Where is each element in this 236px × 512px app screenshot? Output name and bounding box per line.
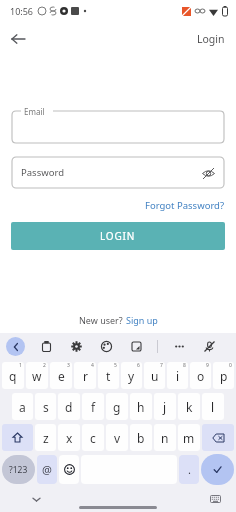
staticText: i [176, 368, 180, 384]
button[interactable]: i [167, 362, 188, 389]
staticText: c [90, 430, 96, 446]
staticText: d [65, 399, 73, 415]
staticText: n [161, 430, 169, 446]
staticText: q [9, 368, 17, 384]
button[interactable]: Shift [2, 424, 33, 451]
staticText: w [32, 368, 42, 384]
staticText: 3 [67, 362, 70, 369]
staticText: 6 [137, 362, 140, 369]
staticText: . [188, 462, 191, 477]
button[interactable]: Backspace [202, 424, 234, 451]
staticText: f [91, 399, 96, 415]
staticText: p [220, 368, 228, 384]
button[interactable]: d [58, 393, 80, 420]
staticText: @ [42, 462, 52, 477]
button[interactable]: Switch keyboard [207, 491, 223, 507]
button[interactable]: Hide keyboard [28, 491, 44, 507]
staticText: Password [21, 166, 64, 179]
button[interactable]: q [2, 362, 24, 389]
button[interactable]: Password [11, 156, 225, 189]
button[interactable]: g [106, 393, 128, 420]
staticText: l [211, 399, 215, 415]
staticText: Email [24, 106, 45, 117]
button[interactable]: f [82, 393, 104, 420]
button[interactable]: h [130, 393, 152, 420]
button[interactable]: Login [197, 32, 225, 46]
staticText: 7 [160, 362, 163, 369]
staticText: z [43, 430, 49, 446]
staticText: New user? [79, 314, 126, 326]
staticText: 1 [19, 362, 22, 369]
staticText: a [19, 399, 26, 415]
button[interactable]: Forgot Password? [145, 199, 225, 212]
button[interactable]: Sign up [126, 314, 158, 326]
button[interactable]: More options [170, 337, 188, 355]
staticText: y [128, 368, 135, 384]
staticText: b [137, 430, 145, 446]
button[interactable]: u [144, 362, 165, 389]
staticText: o [197, 368, 205, 384]
button[interactable]: y [121, 362, 142, 389]
staticText: k [186, 399, 193, 415]
button[interactable]: Voice input off [200, 337, 218, 355]
button[interactable]: x [58, 424, 80, 451]
button[interactable]: c [82, 424, 104, 451]
staticText: g [113, 399, 121, 415]
button[interactable]: Previous [6, 337, 25, 356]
staticText: 5 [114, 362, 117, 369]
staticText: h [137, 399, 145, 415]
button[interactable]: l [202, 393, 224, 420]
button[interactable]: p [213, 362, 234, 389]
staticText: r [83, 368, 88, 384]
button[interactable]: LOGIN [11, 222, 225, 250]
staticText: v [114, 430, 121, 446]
staticText: j [163, 399, 167, 415]
staticText: LOGIN [100, 229, 136, 243]
button[interactable]: Toggle password visibility [199, 164, 217, 182]
button[interactable]: k [178, 393, 200, 420]
staticText: 2 [43, 362, 46, 369]
staticText: 4 [91, 362, 94, 369]
staticText: m [183, 430, 195, 446]
button[interactable]: n [154, 424, 176, 451]
staticText: x [66, 430, 73, 446]
button[interactable]: ?123 [2, 455, 35, 484]
button[interactable]: r [74, 362, 96, 389]
staticText: t [106, 368, 111, 384]
button[interactable]: Resize [127, 337, 145, 355]
button[interactable]: Themes [97, 337, 115, 355]
button[interactable]: Clipboard [37, 337, 55, 355]
staticText: s [43, 399, 49, 415]
staticText: u [151, 368, 159, 384]
button[interactable]: Enter [201, 454, 234, 485]
button[interactable]: e [50, 362, 72, 389]
button[interactable]: z [35, 424, 56, 451]
staticText: 10:56 [10, 5, 34, 17]
button[interactable]: Settings [67, 337, 85, 355]
staticText: 8 [183, 362, 186, 369]
button[interactable]: o [190, 362, 211, 389]
button[interactable]: b [130, 424, 152, 451]
button[interactable]: t [98, 362, 119, 389]
staticText: 9 [206, 362, 209, 369]
button[interactable]: s [35, 393, 56, 420]
button[interactable]: w [26, 362, 48, 389]
staticText: e [58, 368, 65, 384]
button[interactable]: . [179, 455, 199, 484]
button[interactable]: j [154, 393, 176, 420]
button[interactable]: v [106, 424, 128, 451]
button[interactable]: Back [4, 25, 32, 53]
button[interactable]: m [178, 424, 200, 451]
staticText: 0 [229, 362, 232, 369]
button[interactable]: Emoji [59, 455, 79, 484]
button[interactable]: @ [37, 455, 57, 484]
staticText: ?123 [9, 464, 28, 476]
button[interactable]: a [12, 393, 33, 420]
